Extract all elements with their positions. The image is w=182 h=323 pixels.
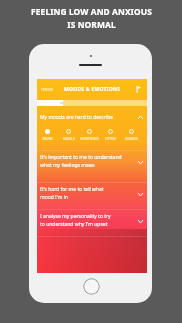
staticText: My moods are hard to describe xyxy=(40,114,114,121)
staticText: MOODS & EMOTIONS xyxy=(64,86,121,93)
staticText: I analyse my personality to try to under… xyxy=(40,213,111,228)
button[interactable]: ALWAYS xyxy=(121,125,142,142)
staticText: NEVER xyxy=(42,137,53,141)
staticText: It's hard for me to tell what mood I'm i… xyxy=(40,186,104,201)
button[interactable]: SOMETIMES xyxy=(79,125,100,142)
button[interactable]: RARELY xyxy=(58,125,79,142)
staticText: RARELY xyxy=(63,137,75,141)
staticText: SOMETIMES xyxy=(80,137,99,141)
staticText: It's important to me to understand what … xyxy=(40,154,122,169)
button[interactable]: Home xyxy=(83,278,100,295)
staticText: FEELING LOW AND ANXIOUS IS NORMAL xyxy=(31,6,152,30)
button[interactable]: OFTEN xyxy=(100,125,121,142)
button[interactable]: It's important to me to understand what … xyxy=(37,150,147,177)
button[interactable]: My moods are hard to describe xyxy=(37,106,147,124)
button[interactable]: NEVER xyxy=(37,125,58,142)
staticText: FINISH xyxy=(41,87,54,92)
button[interactable]: It's hard for me to tell what mood I'm i… xyxy=(37,182,147,209)
staticText: ALWAYS xyxy=(125,137,138,141)
button[interactable]: FINISH xyxy=(38,84,56,95)
staticText: OFTEN xyxy=(105,137,116,141)
button[interactable]: Report xyxy=(131,82,145,96)
button[interactable]: I analyse my personality to try to under… xyxy=(37,209,147,236)
